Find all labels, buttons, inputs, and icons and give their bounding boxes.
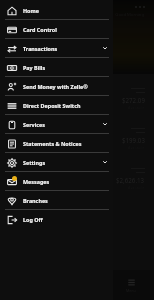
staticText: Pay Bills [23, 64, 46, 71]
staticText: Settings [23, 159, 46, 166]
staticText: $199.03 [122, 136, 145, 144]
button[interactable]: Send Money with Zelle® [0, 77, 113, 96]
staticText: Home [23, 7, 39, 14]
button[interactable]: Statements & Notices [0, 134, 113, 153]
staticText: $272.09 [122, 96, 145, 104]
staticText: Services [23, 121, 45, 128]
staticText: Card Control [23, 26, 57, 33]
staticText: Direct Deposit Switch [23, 102, 81, 109]
button[interactable]: Messages [0, 172, 113, 191]
button[interactable]: Direct Deposit Switch [0, 96, 113, 115]
button[interactable]: Pay Bills [0, 58, 113, 77]
staticText: Log Off [23, 216, 43, 223]
staticText: Transactions [23, 45, 58, 52]
button[interactable]: Transactions [0, 39, 113, 58]
button[interactable]: Card Control [0, 20, 113, 39]
button[interactable]: Home [0, 1, 113, 20]
staticText: Messages [23, 178, 50, 185]
button[interactable]: Settings [0, 153, 113, 172]
button[interactable] [113, 0, 154, 300]
button[interactable]: Services [0, 115, 113, 134]
staticText: $2,626.13 [116, 176, 145, 184]
staticText: Send Money with Zelle® [23, 83, 88, 90]
button[interactable]: Branches [0, 191, 113, 210]
button[interactable]: Log Off [0, 210, 113, 228]
staticText: Branches [23, 197, 48, 204]
staticText: Statements & Notices [23, 140, 82, 147]
